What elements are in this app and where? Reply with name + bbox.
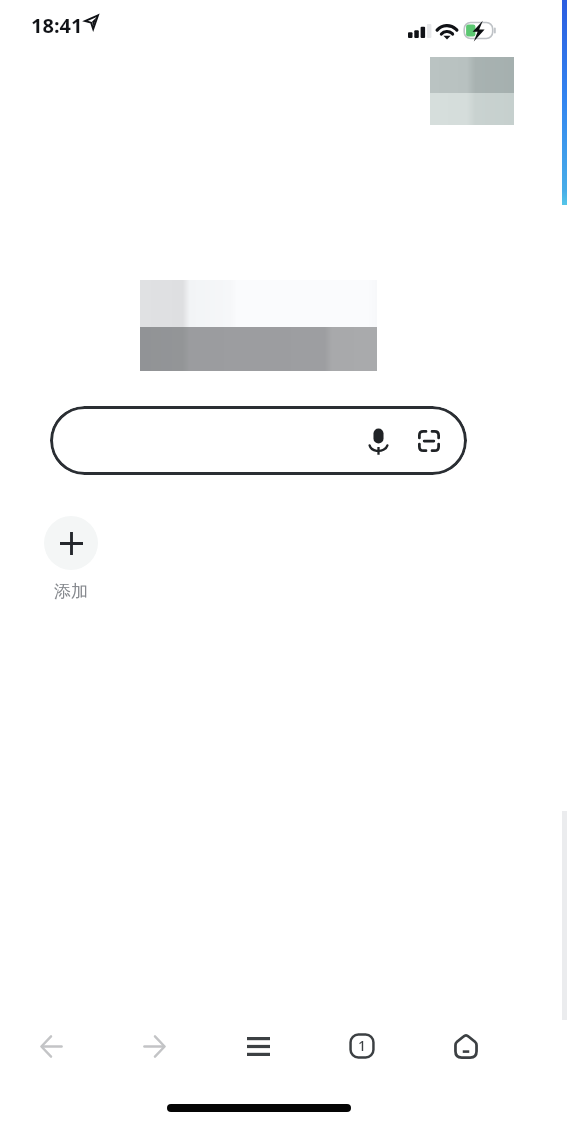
staticText: 18:41 (31, 12, 83, 39)
button[interactable]: Voice search (50, 406, 467, 475)
staticText: 添加 (44, 581, 98, 602)
button[interactable]: Scan (410, 422, 447, 459)
button[interactable]: Tabs (310, 1018, 414, 1074)
button[interactable]: Voice search (360, 423, 397, 460)
button[interactable]: Menu (206, 1018, 310, 1074)
button[interactable]: 添加 (44, 516, 98, 602)
button[interactable]: Forward (103, 1018, 206, 1074)
staticText: 1 (358, 1036, 367, 1055)
button[interactable]: Home (414, 1018, 518, 1074)
button[interactable]: Back (0, 1018, 103, 1074)
